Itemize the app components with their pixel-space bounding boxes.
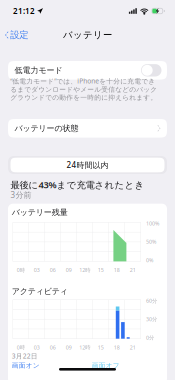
- staticText: 12時: [79, 344, 90, 351]
- staticText: 09: [66, 266, 72, 274]
- staticText: 画面オフ: [92, 361, 120, 370]
- staticText: 0分: [146, 334, 154, 341]
- staticText: 09: [66, 344, 72, 351]
- staticText: 3分前: [10, 189, 31, 200]
- staticText: 15: [98, 266, 104, 274]
- staticText: 06: [50, 266, 56, 274]
- staticText: 100%: [146, 220, 159, 227]
- staticText: バッテリー: [63, 29, 112, 41]
- staticText: 21: [130, 266, 136, 274]
- staticText: 50%: [146, 238, 156, 245]
- staticText: 12時: [79, 266, 90, 274]
- staticText: 3月22日: [12, 351, 38, 360]
- staticText: 0時: [17, 344, 25, 351]
- staticText: 18: [114, 266, 120, 274]
- staticText: 03: [34, 344, 40, 351]
- staticText: 最後に43%まで充電されたとき: [10, 178, 144, 191]
- staticText: 03: [34, 266, 40, 274]
- staticText: 画面オン: [12, 361, 40, 370]
- staticText: バッテリーの状態: [14, 123, 78, 133]
- staticText: 60分: [146, 297, 157, 304]
- staticText: 06: [50, 344, 56, 351]
- staticText: 15: [98, 344, 104, 351]
- staticText: 設定: [10, 29, 28, 41]
- staticText: バッテリー残量: [12, 207, 68, 217]
- staticText: 低電力モード: [14, 65, 62, 75]
- staticText: 30分: [146, 316, 157, 323]
- staticText: 0%: [146, 257, 153, 264]
- staticText: アクティビティ: [12, 286, 68, 296]
- button[interactable]: 低電力モード: [8, 61, 167, 80]
- staticText: 21: [130, 344, 136, 351]
- staticText: 0時: [17, 266, 25, 274]
- staticText: “低電力モード”では、iPhoneを十分に充電できるまでダウンロードやメール受信…: [10, 76, 157, 102]
- button[interactable]: 24時間以内: [8, 156, 167, 174]
- staticText: 24時間以内: [66, 160, 108, 170]
- button[interactable]: バッテリーの状態: [8, 119, 167, 138]
- staticText: 21:12: [13, 6, 35, 16]
- staticText: 18: [114, 344, 120, 351]
- button[interactable]: 設定: [0, 24, 32, 46]
